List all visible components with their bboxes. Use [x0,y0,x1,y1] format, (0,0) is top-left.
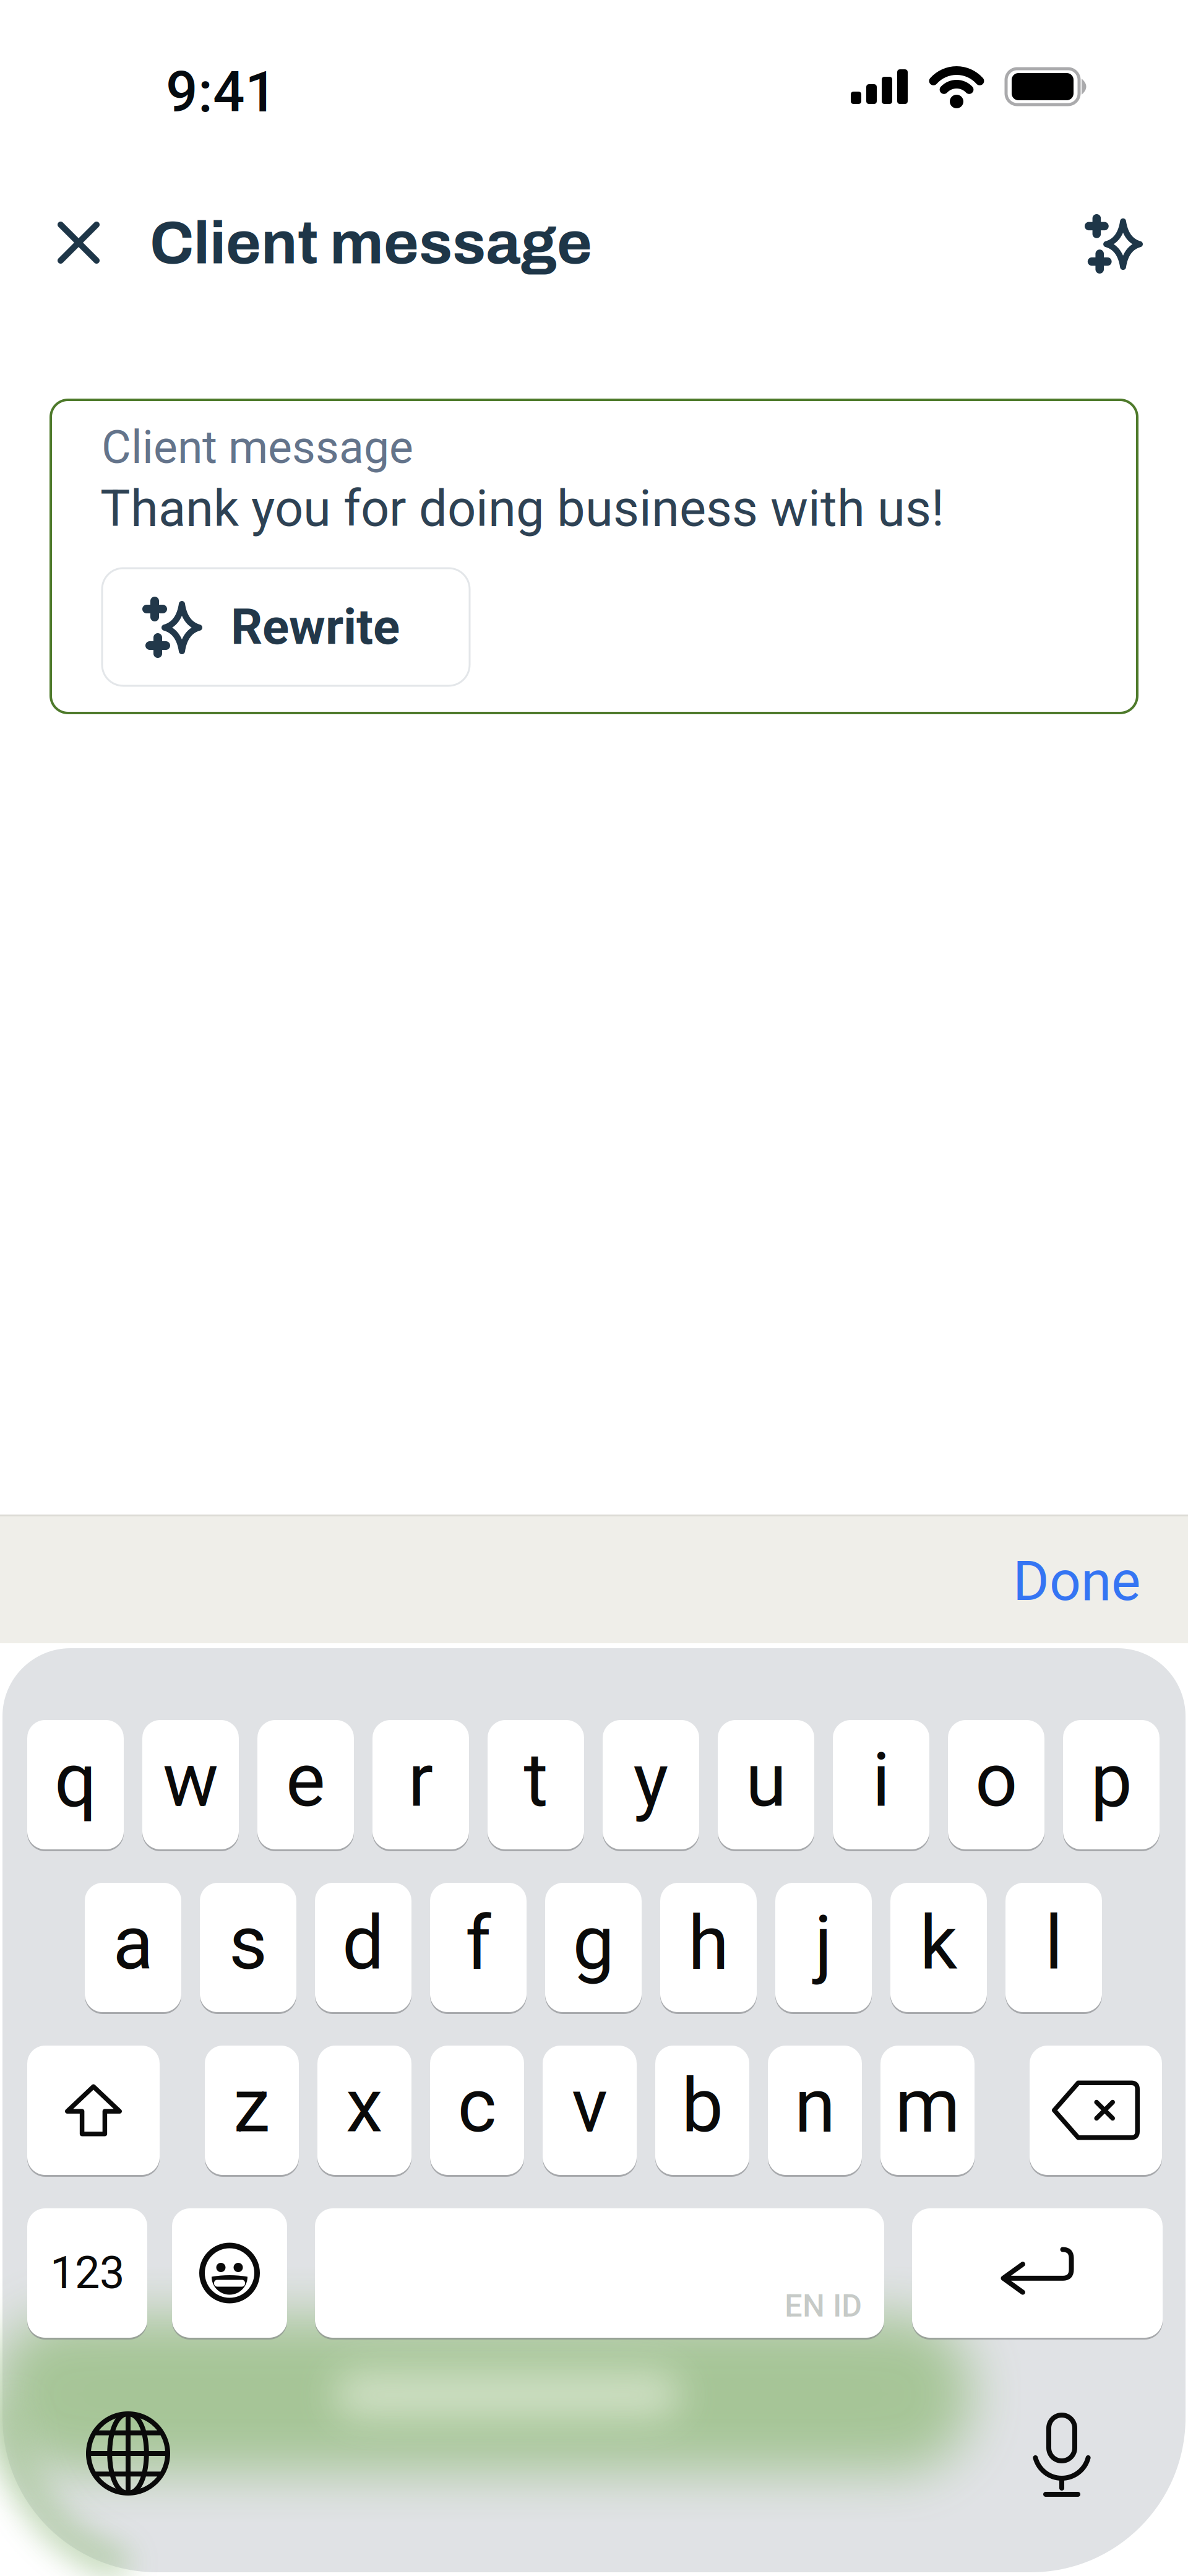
button[interactable]: z [205,2046,299,2175]
staticText: EN ID [785,2287,862,2324]
staticText: k [920,1900,958,1987]
staticText: j [815,1900,833,1987]
button[interactable] [912,2208,1163,2338]
button[interactable]: m [880,2046,975,2175]
button[interactable] [1030,2413,1094,2497]
staticText: z [233,2062,270,2149]
staticText: p [1091,1737,1132,1824]
button[interactable]: b [655,2046,749,2175]
button[interactable]: h [660,1883,757,2012]
staticText: m [895,2062,960,2149]
staticText: q [54,1737,97,1824]
button[interactable] [172,2208,287,2338]
staticText: x [346,2062,383,2149]
button[interactable]: e [257,1720,354,1849]
staticText: Client message [101,421,413,474]
staticText: l [1045,1900,1063,1987]
button[interactable]: 123 [27,2208,147,2338]
staticText: i [872,1737,890,1824]
button[interactable]: u [718,1720,814,1849]
button[interactable]: q [27,1720,124,1849]
button[interactable] [1030,2046,1162,2175]
button[interactable]: l [1005,1883,1102,2012]
button[interactable]: t [488,1720,584,1849]
button[interactable]: p [1063,1720,1160,1849]
button[interactable]: Done [998,1542,1155,1620]
staticText: b [682,2062,723,2149]
staticText: Rewrite [231,598,400,656]
staticText: a [113,1900,153,1987]
button[interactable] [27,2046,160,2175]
button[interactable]: n [768,2046,862,2175]
button[interactable]: v [543,2046,637,2175]
button[interactable]: x [317,2046,411,2175]
button[interactable]: j [775,1883,872,2012]
staticText: u [746,1737,786,1824]
staticText: r [408,1737,433,1824]
button[interactable]: c [430,2046,524,2175]
staticText: o [975,1737,1017,1824]
staticText: 9:41 [166,59,277,125]
button[interactable]: s [200,1883,296,2012]
button[interactable]: w [142,1720,239,1849]
button[interactable]: o [948,1720,1044,1849]
staticText: h [688,1900,729,1987]
button[interactable]: d [315,1883,411,2012]
button[interactable]: i [833,1720,929,1849]
button[interactable]: a [85,1883,181,2012]
button[interactable]: EN ID [315,2208,884,2338]
button[interactable] [50,214,107,271]
staticText: n [794,2062,835,2149]
staticText: Client message [150,210,592,276]
staticText: y [633,1737,669,1824]
button[interactable]: Rewrite [102,568,470,686]
staticText: Thank you for doing business with us! [100,479,944,538]
button[interactable]: f [430,1883,527,2012]
staticText: g [573,1900,614,1987]
staticText: e [286,1737,325,1824]
staticText: 123 [50,2247,124,2299]
staticText: v [572,2062,608,2149]
staticText: c [458,2062,497,2149]
staticText: w [163,1737,218,1824]
button[interactable] [1084,214,1144,274]
button[interactable]: Client message [51,400,1137,713]
staticText: s [229,1900,267,1987]
staticText: d [342,1900,384,1987]
staticText: Done [1013,1549,1140,1613]
staticText: t [524,1737,548,1824]
button[interactable]: g [545,1883,642,2012]
button[interactable]: y [603,1720,699,1849]
staticText: f [465,1900,491,1987]
button[interactable] [86,2411,170,2496]
button[interactable]: r [372,1720,469,1849]
button[interactable]: k [890,1883,987,2012]
